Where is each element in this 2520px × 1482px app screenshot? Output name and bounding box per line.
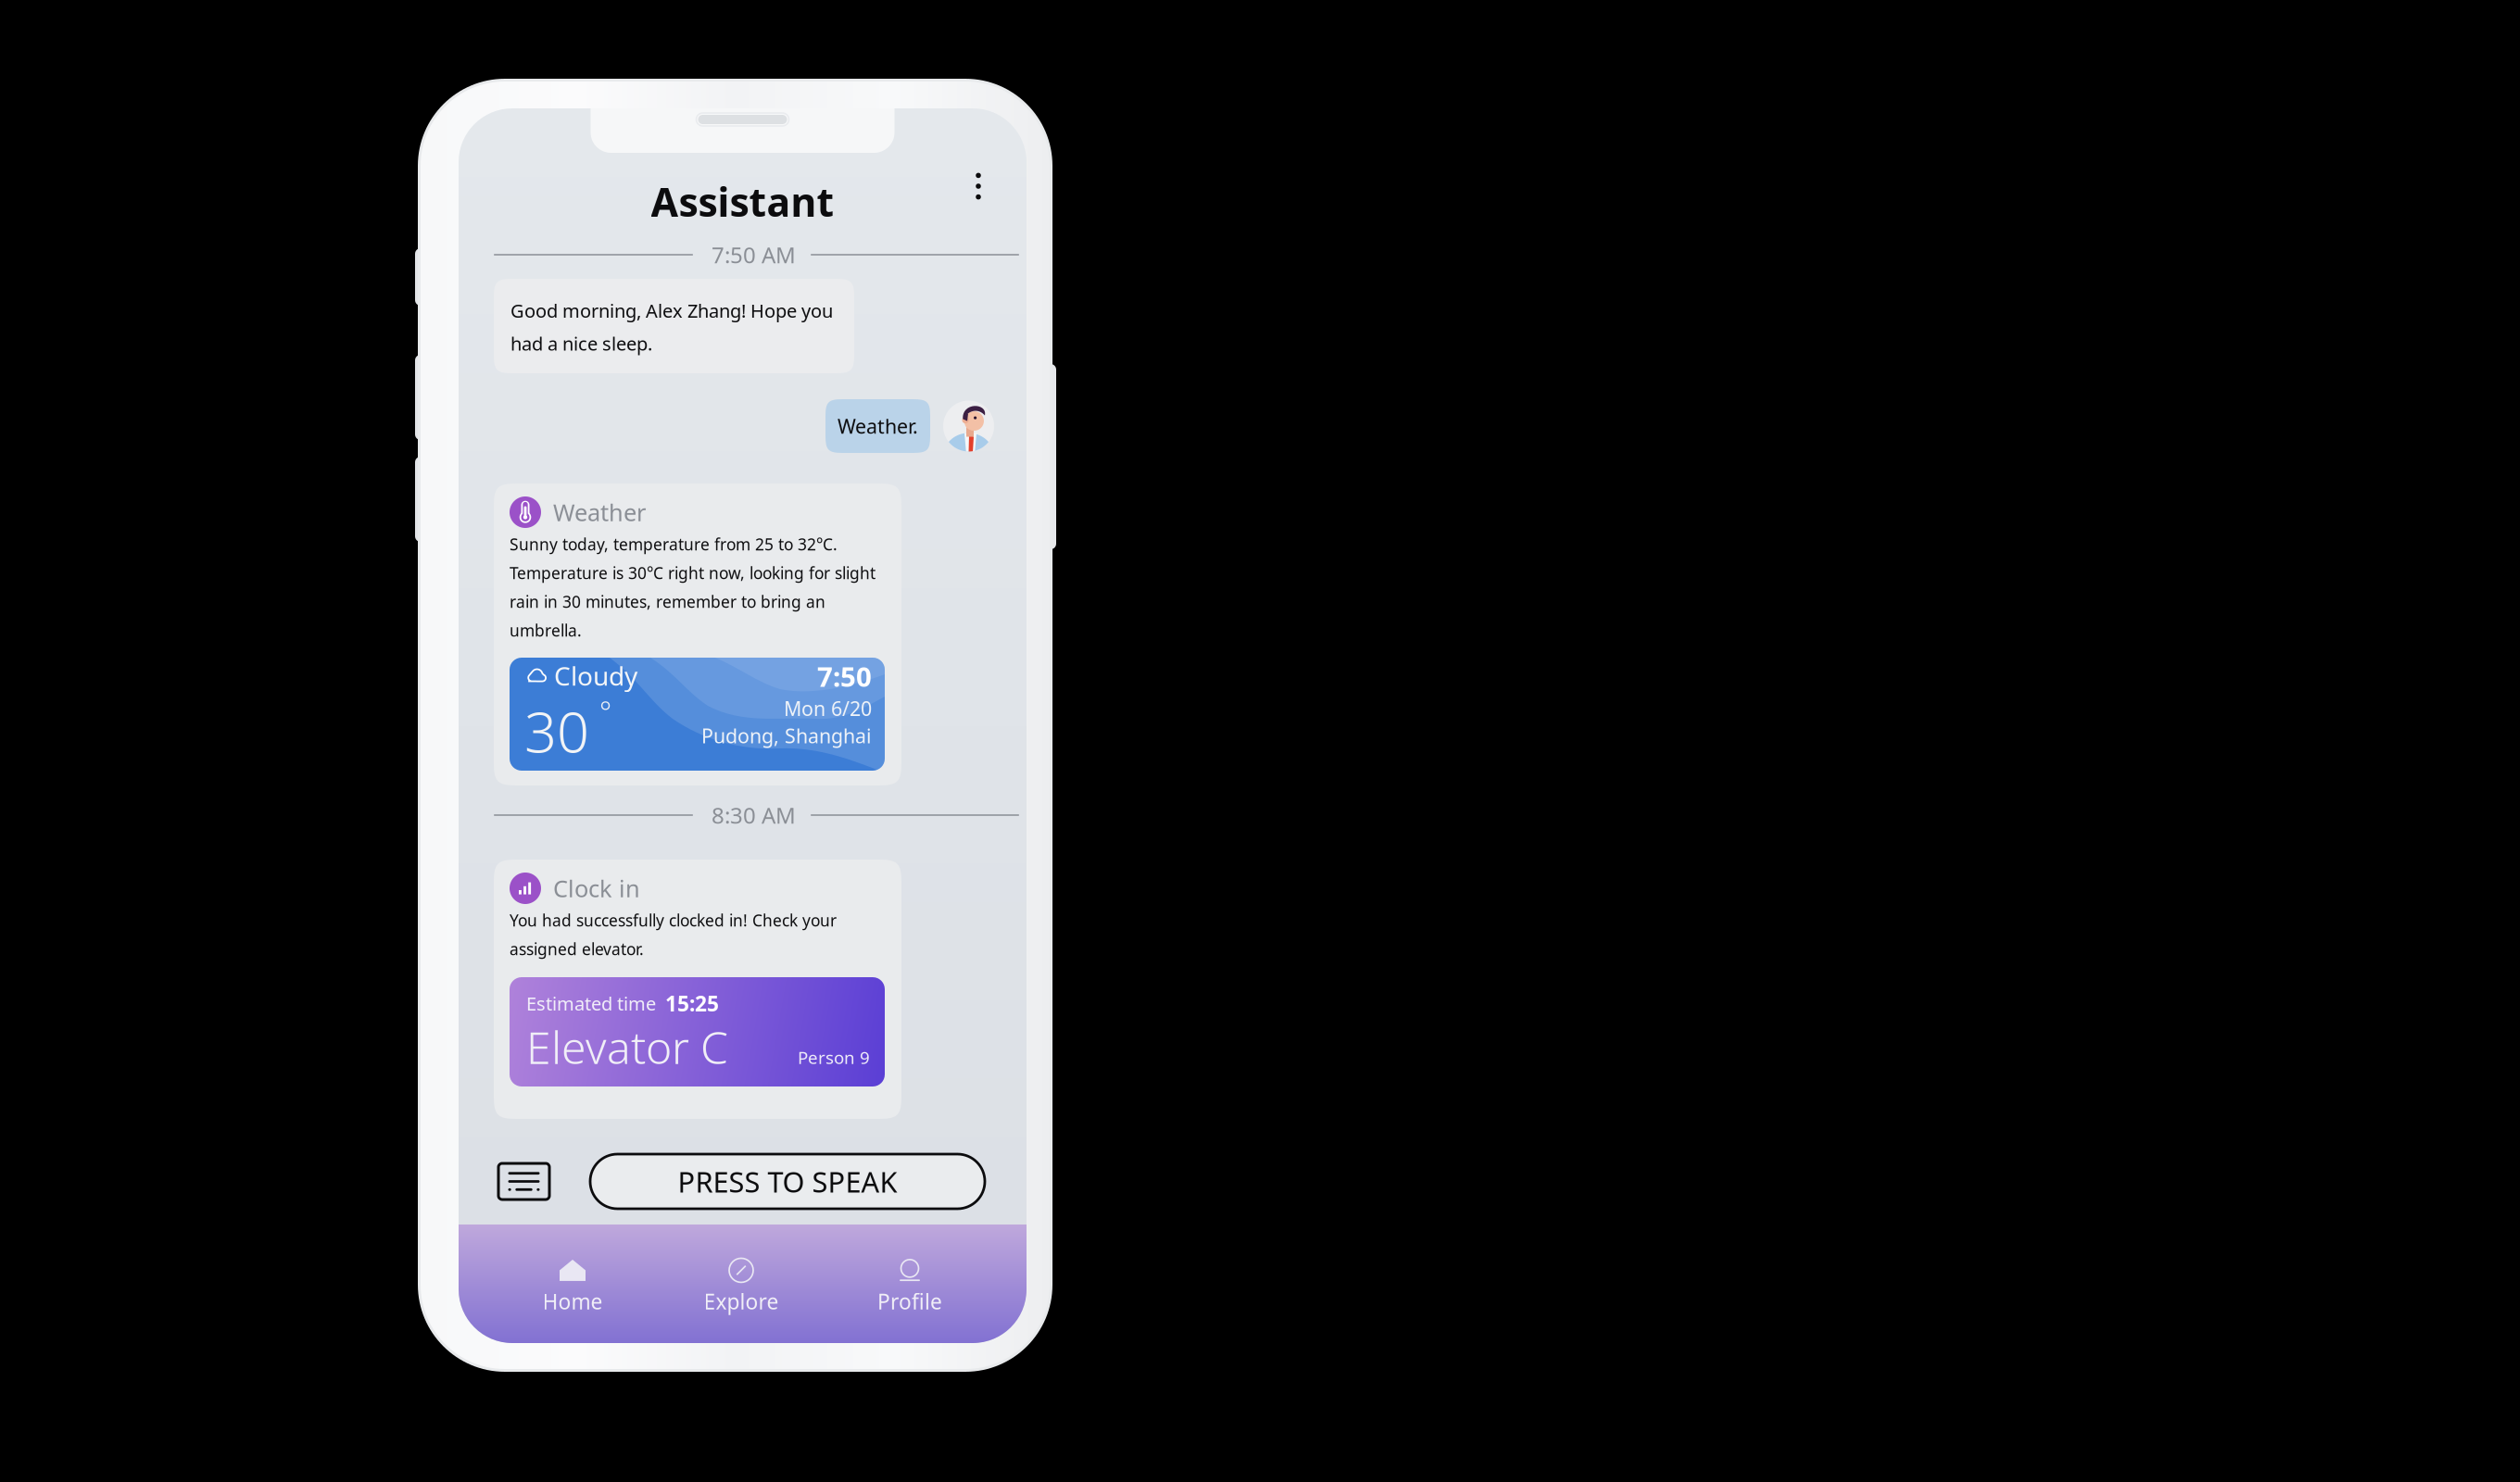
button[interactable]: Keyboard	[498, 1162, 550, 1200]
staticText: rain in 30 minutes, remember to bring an	[510, 591, 825, 612]
button[interactable]: Home	[488, 1252, 657, 1321]
staticText: You had successfully clocked in! Check y…	[510, 910, 837, 931]
staticText: Weather.	[838, 413, 918, 439]
button[interactable]: Explore	[657, 1252, 825, 1321]
staticText: PRESS TO SPEAK	[678, 1163, 897, 1200]
staticText: 30	[524, 693, 589, 768]
staticText: Assistant	[651, 175, 834, 228]
button[interactable]: More options	[960, 164, 997, 208]
staticText: Estimated time	[526, 991, 656, 1016]
staticText: Weather	[553, 497, 646, 528]
staticText: Sunny today, temperature from 25 to 32°C…	[510, 534, 838, 555]
staticText: °	[599, 693, 611, 730]
staticText: umbrella.	[510, 620, 582, 641]
staticText: Pudong, Shanghai	[701, 722, 872, 749]
staticText: Home	[542, 1287, 603, 1315]
staticText: Temperature is 30°C right now, looking f…	[510, 562, 876, 584]
button[interactable]: Profile	[825, 1252, 994, 1321]
staticText: Explore	[704, 1287, 779, 1315]
staticText: Clock in	[553, 873, 640, 904]
staticText: 15:25	[665, 989, 719, 1017]
staticText: had a nice sleep.	[510, 331, 652, 356]
staticText: Cloudy	[554, 658, 637, 693]
button[interactable]: PRESS TO SPEAK	[590, 1154, 985, 1209]
staticText: Elevator C	[526, 1017, 728, 1076]
staticText: 8:30 AM	[712, 800, 796, 830]
staticText: Profile	[877, 1287, 942, 1315]
staticText: assigned elevator.	[510, 938, 644, 960]
staticText: Person 9	[798, 1046, 870, 1069]
staticText: 7:50 AM	[712, 240, 796, 270]
staticText: Mon 6/20	[784, 695, 872, 721]
staticText: 7:50	[817, 658, 872, 694]
staticText: Good morning, Alex Zhang! Hope you	[510, 298, 833, 323]
